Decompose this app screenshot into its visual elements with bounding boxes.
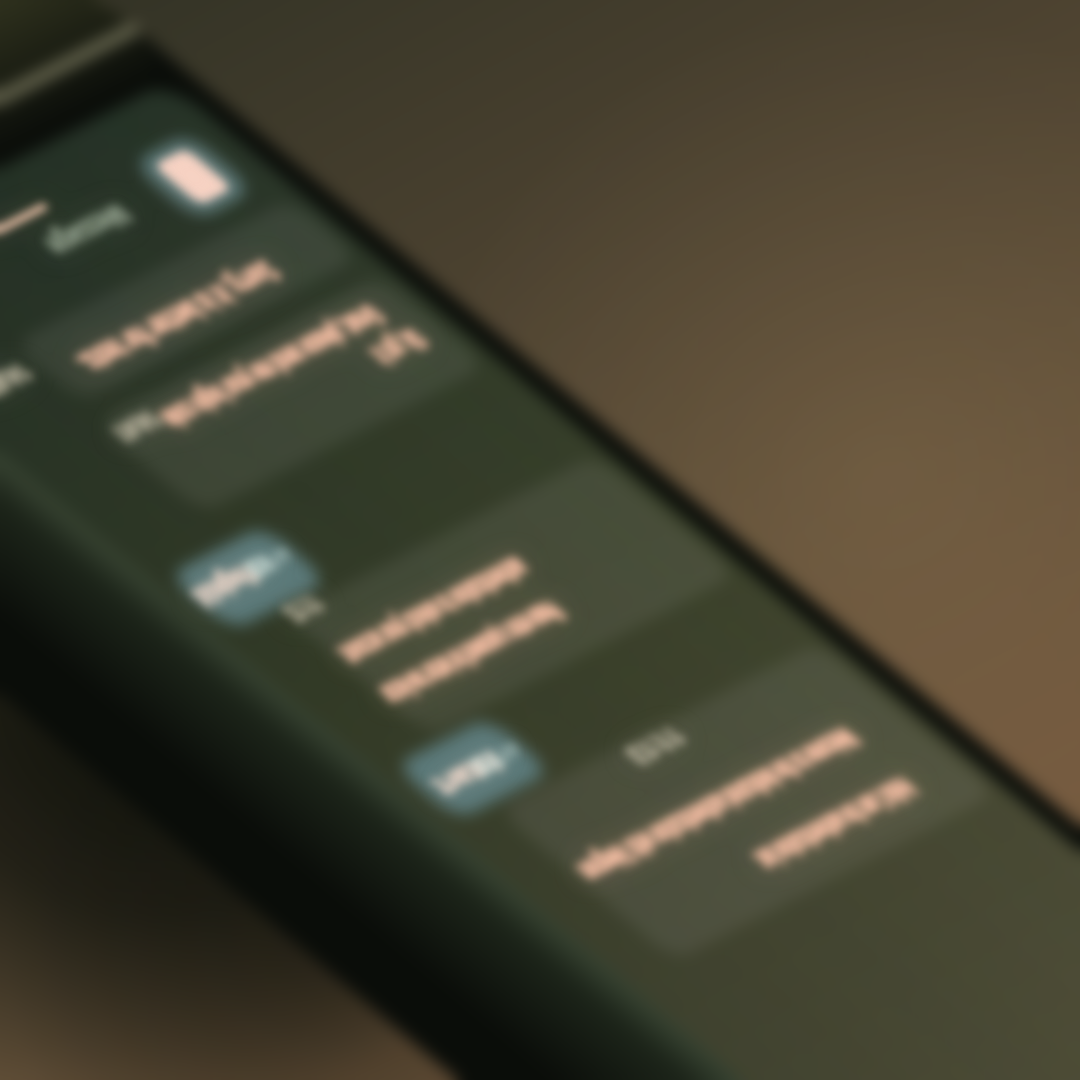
button[interactable] bbox=[0, 0, 1080, 1080]
